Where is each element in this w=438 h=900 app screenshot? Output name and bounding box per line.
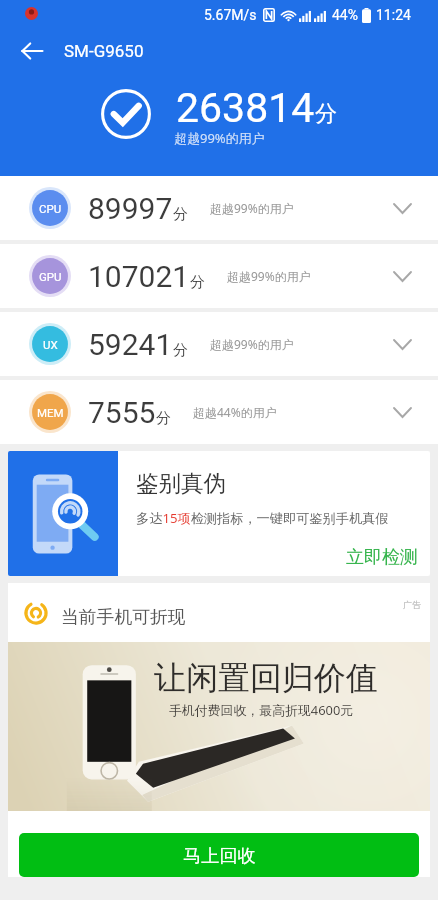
staticText: UX <box>43 338 58 351</box>
button[interactable]: Back <box>6 33 58 69</box>
staticText: 分 <box>315 100 337 128</box>
staticText: 5.67M/s <box>204 7 257 23</box>
staticText: 超越99%的用户 <box>174 129 265 147</box>
staticText: 让闲置回归价值 <box>154 658 378 698</box>
staticText: 107021 <box>88 259 190 294</box>
button[interactable]: Expand <box>375 380 429 444</box>
staticText: 89997 <box>88 191 173 226</box>
staticText: 多达15项检测指标，一键即可鉴别手机真假 <box>136 509 389 527</box>
staticText: 超越99%的用户 <box>210 200 294 216</box>
button[interactable]: CPU <box>0 176 438 240</box>
staticText: 当前手机可折现 <box>61 606 186 628</box>
button[interactable]: Expand <box>375 176 429 240</box>
staticText: CPU <box>39 202 62 215</box>
staticText: 分 <box>156 409 171 428</box>
button[interactable]: 鉴别真伪 <box>8 451 430 576</box>
button[interactable]: GPU <box>0 244 438 308</box>
staticText: 11:24 <box>376 7 411 23</box>
staticText: 263814 <box>176 84 315 132</box>
staticText: 鉴别真伪 <box>136 469 226 497</box>
button[interactable]: 当前手机可折现 <box>8 583 430 642</box>
staticText: 59241 <box>88 327 173 362</box>
staticText: MEM <box>37 406 64 419</box>
staticText: 手机付费回收，最高折现4600元 <box>169 701 354 719</box>
staticText: 44% <box>332 7 358 23</box>
staticText: 分 <box>173 341 188 360</box>
button[interactable]: 马上回收 <box>19 833 419 877</box>
button[interactable]: UX <box>0 312 438 376</box>
staticText: SM-G9650 <box>64 41 144 61</box>
staticText: 超越99%的用户 <box>210 336 294 352</box>
button[interactable]: Expand <box>375 312 429 376</box>
staticText: GPU <box>39 270 62 283</box>
button[interactable]: MEM <box>0 380 438 444</box>
staticText: 超越44%的用户 <box>193 404 277 420</box>
staticText: 7555 <box>88 395 156 430</box>
staticText: 分 <box>173 205 188 224</box>
button[interactable]: 立即检测 <box>346 546 418 569</box>
staticText: 广告 <box>403 599 421 610</box>
staticText: 马上回收 <box>183 844 256 867</box>
staticText: 分 <box>190 273 205 292</box>
staticText: 超越99%的用户 <box>227 268 311 284</box>
button[interactable]: Expand <box>375 244 429 308</box>
